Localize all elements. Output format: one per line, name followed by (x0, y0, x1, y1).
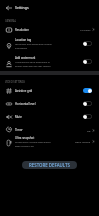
button[interactable]: Back (2, 1, 16, 15)
staticText: RESTORE DEFAULTS (29, 162, 70, 168)
button[interactable]: Location tag (83, 41, 92, 46)
staticText: Timer (15, 128, 23, 132)
button[interactable]: Assistive grid (83, 88, 92, 93)
button[interactable]: Mute (0, 111, 99, 122)
button[interactable]: Add watermark (83, 59, 92, 64)
button[interactable]: Resolution (0, 24, 99, 35)
button[interactable]: Horizontal level (0, 98, 99, 109)
button[interactable]: Assistive grid (0, 85, 99, 96)
staticText: GENERAL (5, 19, 17, 22)
staticText: Tag photos and videos with location info… (15, 43, 52, 49)
staticText: Ultra snapshot (15, 136, 35, 140)
staticText: Add watermark (15, 56, 36, 60)
button[interactable]: Timer (0, 125, 99, 135)
button[interactable]: Mute (83, 114, 92, 119)
staticText: VIDEO SETTINGS (5, 80, 25, 83)
staticText: Automatically add a watermark to photos … (15, 61, 51, 67)
staticText: Resolution (15, 28, 29, 32)
staticText: Open camera (75, 140, 91, 143)
staticText: Assistive grid (15, 89, 33, 93)
button[interactable]: Location tag (0, 33, 99, 53)
staticText: Horizontal level (15, 102, 36, 106)
staticText: 4:3/50MP (80, 28, 91, 31)
staticText: Settings (15, 5, 29, 10)
staticText: Location tag (15, 38, 32, 42)
button[interactable]: Add watermark (0, 52, 99, 70)
button[interactable]: RESTORE DEFAULTS (22, 161, 77, 169)
staticText: Double-press Volume down button when scr… (15, 141, 51, 147)
button[interactable]: Horizontal level (83, 101, 92, 106)
staticText: Mute (15, 115, 22, 119)
button[interactable]: Ultra snapshot (0, 133, 99, 150)
staticText: Off (87, 129, 91, 132)
